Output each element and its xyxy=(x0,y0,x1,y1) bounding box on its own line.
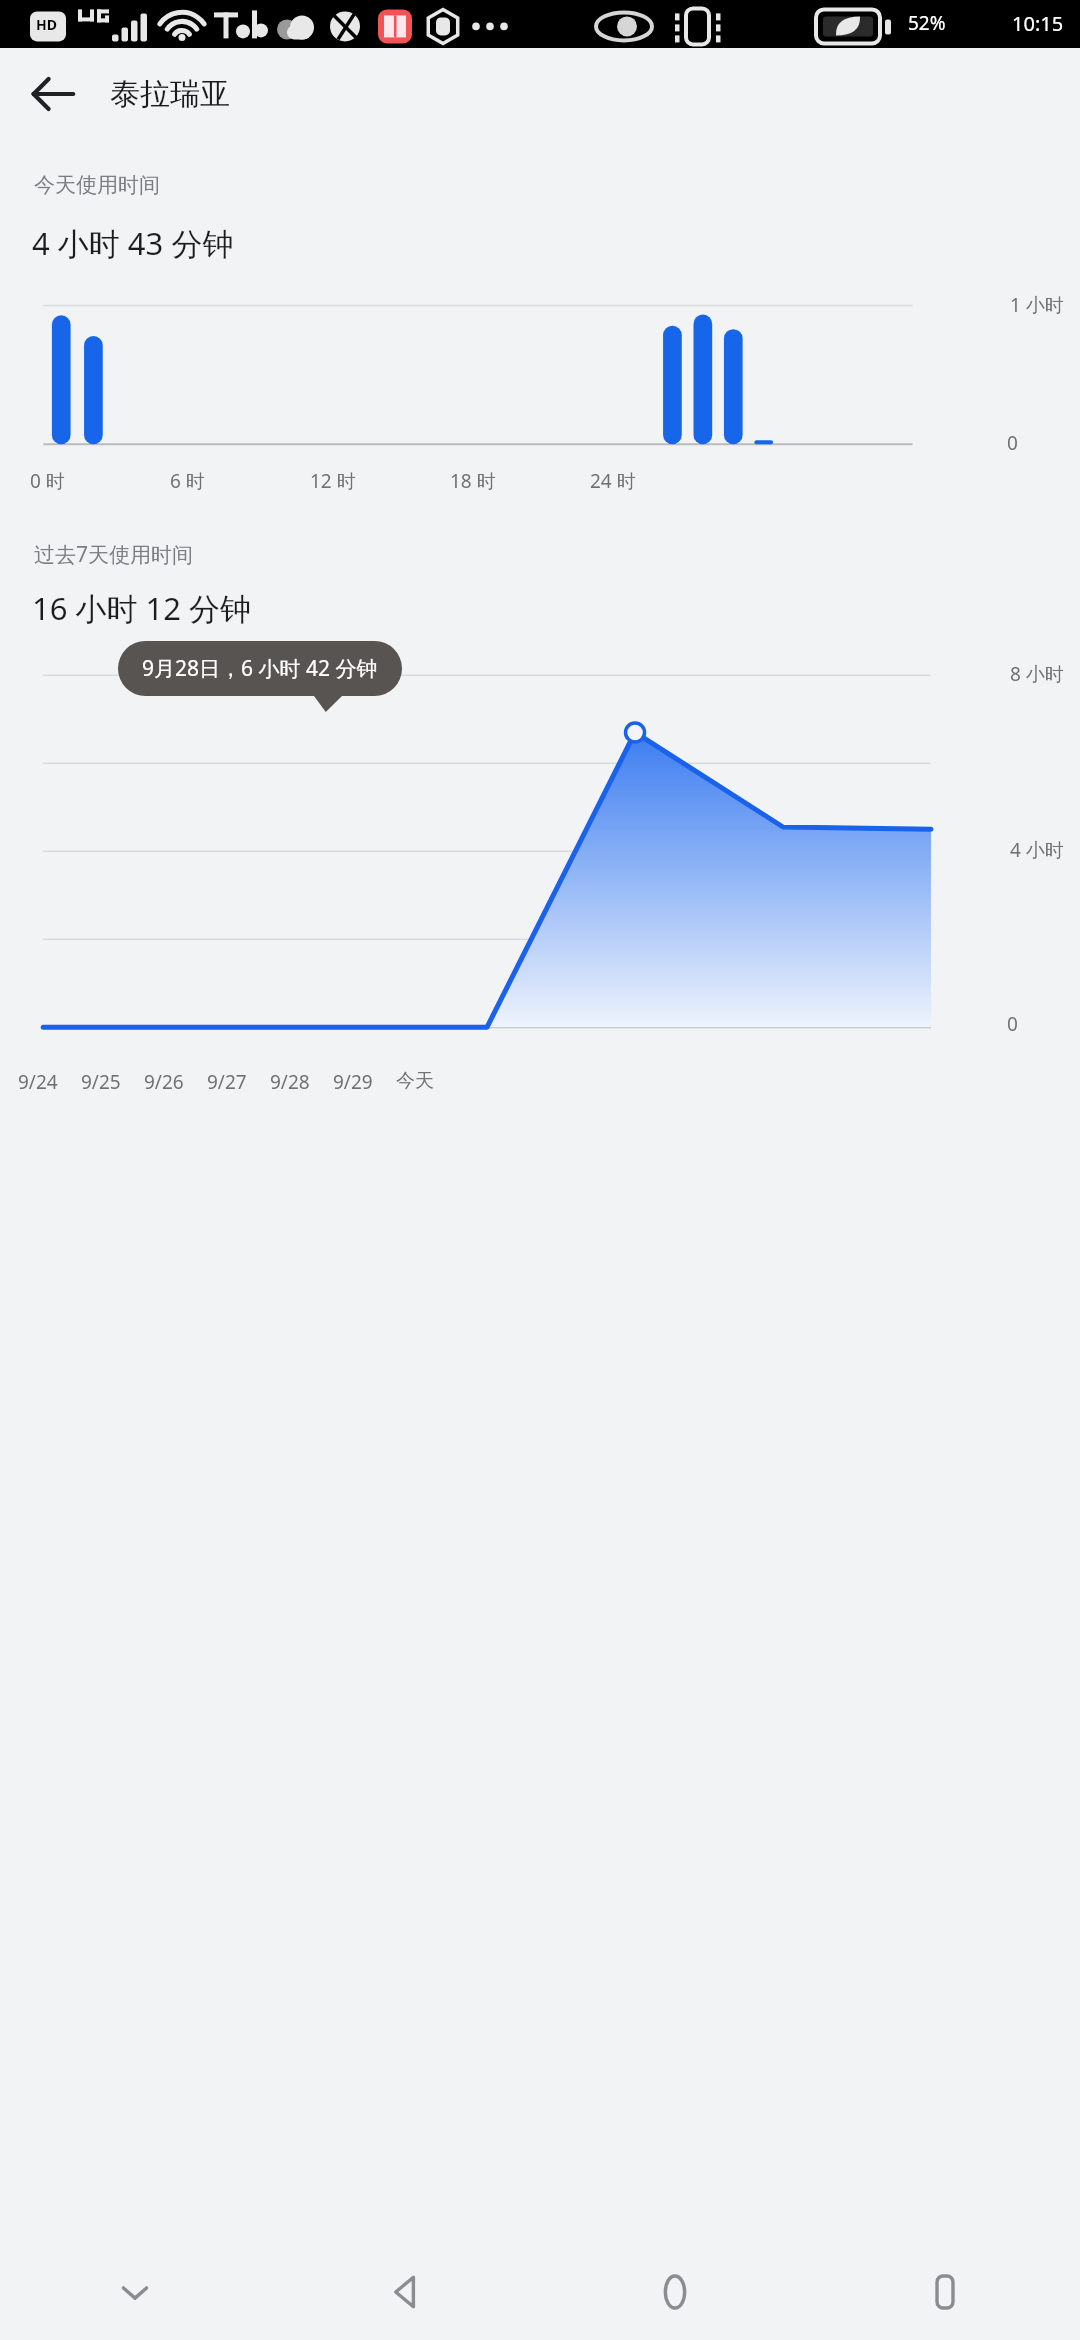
staticText: 9/28 xyxy=(270,1069,310,1095)
staticText: 0 xyxy=(1007,430,1018,456)
staticText: 今天 xyxy=(396,1069,434,1093)
staticText: 24 时 xyxy=(590,468,636,494)
staticText: 4 小时 xyxy=(1010,837,1064,863)
staticText: HD xyxy=(36,15,57,34)
staticText: 0 时 xyxy=(30,468,65,494)
button[interactable]: 收起键盘 xyxy=(0,2244,270,2340)
button[interactable]: 最近任务 xyxy=(810,2244,1080,2340)
staticText: 9/26 xyxy=(144,1069,184,1095)
staticText: 9/27 xyxy=(207,1069,247,1095)
staticText: 泰拉瑞亚 xyxy=(110,75,230,113)
staticText: 8 小时 xyxy=(1010,661,1064,687)
staticText: 6 时 xyxy=(170,468,205,494)
staticText: 1 小时 xyxy=(1010,292,1064,318)
staticText: 10:15 xyxy=(1012,10,1064,37)
staticText: 9/24 xyxy=(18,1069,58,1095)
staticText: 0 xyxy=(1007,1011,1018,1037)
staticText: 9月28日，6 小时 42 分钟 xyxy=(142,654,378,683)
button[interactable]: 返回 xyxy=(20,61,86,127)
staticText: 16 小时 12 分钟 xyxy=(32,587,252,629)
button[interactable]: 返回 xyxy=(270,2244,540,2340)
staticText: 今天使用时间 xyxy=(34,172,160,198)
staticText: 52% xyxy=(908,10,946,36)
staticText: 9/25 xyxy=(81,1069,121,1095)
staticText: 18 时 xyxy=(450,468,496,494)
staticText: 过去7天使用时间 xyxy=(34,540,194,569)
staticText: 4 小时 43 分钟 xyxy=(32,222,234,264)
staticText: 9/29 xyxy=(333,1069,373,1095)
button[interactable]: 9月28日，6 小时 42 分钟 xyxy=(118,641,402,696)
button[interactable]: 主屏幕 xyxy=(540,2244,810,2340)
staticText: 12 时 xyxy=(310,468,356,494)
